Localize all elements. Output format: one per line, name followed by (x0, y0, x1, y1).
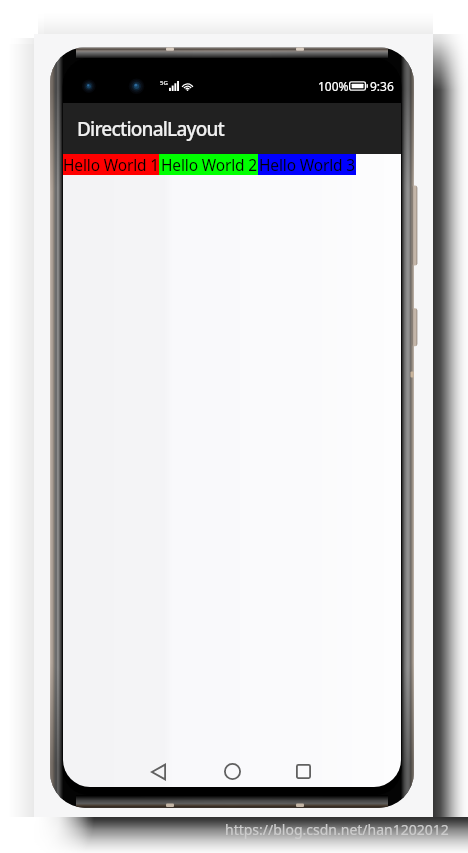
button[interactable]: Recents (281, 756, 325, 787)
button[interactable]: DirectionalLayout (63, 103, 401, 154)
button[interactable]: Hello World 1 (63, 154, 159, 175)
staticText: Hello World 1 (63, 154, 159, 175)
staticText: https://blog.csdn.net/han1202012 (225, 820, 449, 839)
staticText: 9:36 (370, 78, 394, 94)
button[interactable]: Home (210, 756, 254, 787)
staticText: 5G (160, 79, 168, 87)
button[interactable]: Back (136, 756, 180, 787)
button[interactable]: Hello World 3 (258, 154, 356, 175)
staticText: Hello World 3 (259, 154, 355, 175)
button[interactable]: Hello World 2 (159, 154, 258, 175)
staticText: Hello World 2 (161, 154, 257, 175)
staticText: 100% (318, 78, 349, 94)
staticText: DirectionalLayout (77, 116, 225, 142)
